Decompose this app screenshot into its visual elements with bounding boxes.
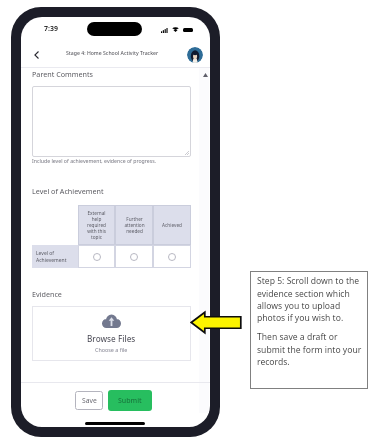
staticText: Level of Achievement (32, 186, 104, 196)
staticText: Achieved (162, 222, 182, 228)
staticText: Submit (118, 396, 142, 406)
staticText: Choose a file (95, 346, 128, 353)
button[interactable]: Select rating (78, 245, 115, 268)
button[interactable]: Browse Files (32, 306, 191, 361)
button[interactable]: Back (27, 43, 45, 67)
button[interactable]: Profile (187, 47, 203, 63)
button[interactable]: Select rating (115, 245, 153, 268)
staticText: Step 5: Scroll down to the evidence sect… (257, 275, 365, 323)
staticText: Browse Files (87, 333, 136, 344)
staticText: Evidence (32, 289, 62, 299)
staticText: 7:39 (44, 24, 58, 34)
staticText: Level of Achievement (36, 250, 67, 264)
button[interactable]: Save (75, 391, 103, 410)
staticText: Further attention needed (124, 216, 145, 234)
staticText: Then save a draft or submit the form int… (257, 331, 365, 367)
staticText: Stage 4: Home School Activity Tracker (66, 49, 159, 56)
button[interactable]: Select rating (153, 245, 191, 268)
staticText: Save (82, 396, 97, 405)
staticText: Include level of achievement, evidence o… (32, 157, 157, 164)
staticText: External help required with this topic (87, 210, 106, 240)
staticText: Parent Comments (32, 69, 94, 79)
button[interactable]: Submit (108, 390, 152, 411)
